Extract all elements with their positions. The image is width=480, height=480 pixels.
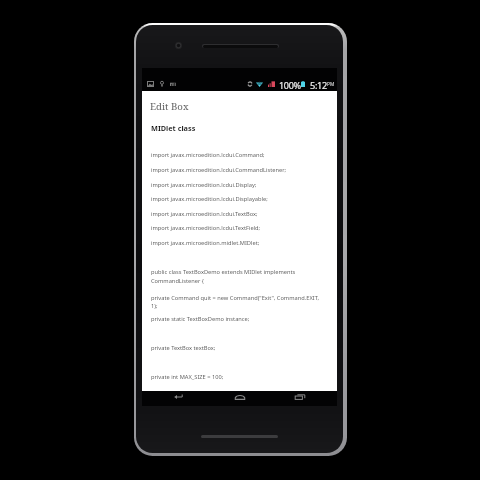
staticText: import javax.microedition.lcdui.Display; — [151, 181, 257, 189]
staticText: CommandListener { — [151, 277, 205, 285]
staticText: 1); — [151, 302, 158, 310]
staticText: Edit Box — [150, 100, 189, 113]
staticText: import javax.microedition.midlet.MIDlet; — [151, 239, 260, 247]
staticText: import javax.microedition.lcdui.TextFiel… — [151, 224, 261, 232]
button[interactable]: Recent apps — [291, 391, 309, 406]
staticText: MIDlet class — [151, 123, 196, 133]
staticText: import javax.microedition.lcdui.Command; — [151, 151, 265, 159]
staticText: import javax.microedition.lcdui.CommandL… — [151, 166, 287, 174]
staticText: private int MAX_SIZE = 100; — [151, 373, 224, 381]
staticText: private Command quit = new Command("Exit… — [151, 294, 319, 302]
button[interactable]: Edit Box — [142, 91, 337, 112]
staticText: import javax.microedition.lcdui.TextBox; — [151, 210, 258, 218]
staticText: 5:12 — [310, 79, 328, 92]
staticText: private TextBox textBox; — [151, 344, 216, 352]
button[interactable]: Back — [170, 391, 188, 406]
button[interactable]: Home — [231, 391, 249, 406]
staticText: public class TextBoxDemo extends MIDlet … — [151, 268, 296, 276]
staticText: PM — [327, 81, 335, 88]
staticText: private static TextBoxDemo instance; — [151, 315, 250, 323]
staticText: import javax.microedition.lcdui.Displaya… — [151, 195, 268, 203]
staticText: 100% — [279, 79, 301, 91]
